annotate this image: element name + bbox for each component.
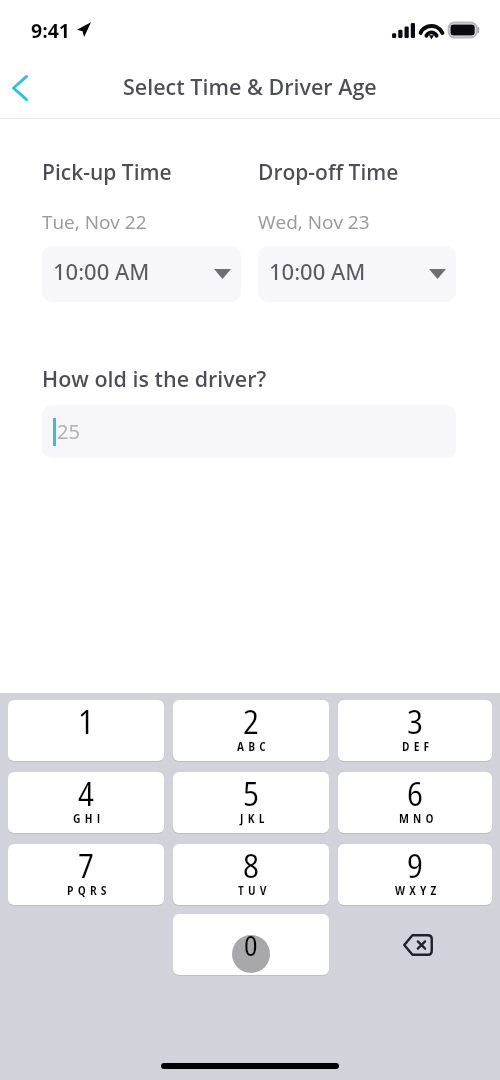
button[interactable]: 5 [173, 772, 329, 833]
staticText: 0 [244, 926, 258, 964]
button[interactable]: Back [0, 64, 44, 111]
staticText: 1 [78, 700, 94, 744]
button[interactable]: Backspace [338, 914, 492, 975]
staticText: 10:00 AM [269, 256, 366, 286]
button[interactable]: 10:00 AM [42, 246, 241, 302]
staticText: Select Time & Driver Age [123, 72, 377, 101]
staticText: 10:00 AM [53, 256, 150, 286]
staticText: 7 [78, 844, 94, 888]
button[interactable]: 10:00 AM [258, 246, 456, 302]
staticText: 5 [243, 772, 259, 816]
staticText: Drop-off Time [258, 158, 399, 187]
staticText: How old is the driver? [42, 364, 267, 393]
staticText: 9 [407, 844, 423, 888]
button[interactable]: 4 [8, 772, 164, 833]
staticText: ABC [237, 739, 271, 755]
staticText: JKL [240, 811, 269, 827]
button[interactable]: 7 [8, 844, 164, 905]
button[interactable]: 2 [173, 700, 329, 761]
button[interactable]: 3 [338, 700, 492, 761]
button[interactable]: 6 [338, 772, 492, 833]
button[interactable]: 0 [173, 914, 329, 975]
staticText: DEF [402, 739, 434, 755]
staticText: MNO [399, 811, 438, 827]
staticText: 8 [243, 844, 259, 888]
staticText: 2 [243, 700, 259, 744]
staticText: 25 [57, 418, 80, 445]
staticText: 9:41 [31, 17, 71, 44]
button[interactable]: 8 [173, 844, 329, 905]
button[interactable]: 25 [42, 405, 456, 458]
staticText: 4 [78, 772, 94, 816]
staticText: 3 [407, 700, 423, 744]
button[interactable]: 9 [338, 844, 492, 905]
staticText: 6 [407, 772, 423, 816]
staticText: GHI [73, 811, 105, 827]
staticText: TUV [238, 883, 271, 899]
staticText: PQRS [67, 883, 111, 899]
staticText: Tue, Nov 22 [42, 209, 147, 235]
staticText: Pick-up Time [42, 158, 172, 187]
button[interactable]: 1 [8, 700, 164, 761]
staticText: Wed, Nov 23 [258, 209, 370, 235]
staticText: WXYZ [395, 883, 441, 899]
